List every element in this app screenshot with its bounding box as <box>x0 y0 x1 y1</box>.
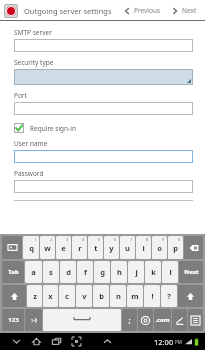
staticText: m <box>131 291 139 301</box>
button[interactable]: Shift <box>178 285 203 307</box>
button[interactable]: Screen capture <box>70 335 83 348</box>
button[interactable] <box>14 150 193 163</box>
staticText: .com <box>155 316 170 324</box>
staticText: e <box>61 243 66 253</box>
staticText: c <box>65 291 69 301</box>
button[interactable]: ! <box>144 285 160 307</box>
button[interactable]: Require sign-in <box>14 122 76 134</box>
staticText: l <box>169 267 172 277</box>
button[interactable]: u <box>120 236 135 259</box>
staticText: p <box>173 243 178 253</box>
staticText: x <box>48 291 53 301</box>
staticText: . <box>173 286 175 291</box>
staticText: n <box>116 291 121 301</box>
button[interactable]: Previous <box>120 4 164 17</box>
button[interactable]: e <box>56 236 71 259</box>
staticText: PM <box>175 339 182 345</box>
button[interactable]: c <box>59 285 75 307</box>
staticText: s <box>49 267 53 277</box>
button[interactable]: Expand <box>101 335 114 348</box>
button[interactable]: x <box>43 285 58 307</box>
button[interactable]: .com <box>154 309 171 331</box>
button[interactable]: Security type dropdown <box>14 69 193 85</box>
button[interactable]: w <box>40 236 55 259</box>
button[interactable]: t <box>88 236 103 259</box>
staticText: Tab <box>8 268 19 276</box>
staticText: Port <box>14 91 27 100</box>
staticText: 3 <box>66 237 69 242</box>
button[interactable]: Emoji <box>2 236 22 259</box>
staticText: 0 <box>178 237 181 242</box>
button[interactable]: :-) <box>25 309 42 331</box>
button[interactable]: g <box>94 261 110 283</box>
button[interactable]: b <box>93 285 109 307</box>
staticText: v <box>82 291 87 301</box>
button[interactable]: n <box>110 285 126 307</box>
button[interactable]: p <box>168 236 183 259</box>
staticText: y <box>109 243 114 253</box>
staticText: 8 <box>146 237 149 242</box>
button[interactable]: r <box>72 236 87 259</box>
staticText: User name <box>14 139 48 148</box>
button[interactable]: ; <box>122 309 137 331</box>
staticText: b <box>99 291 104 301</box>
staticText: u <box>125 243 130 253</box>
staticText: 123 <box>8 316 19 324</box>
button[interactable]: Handwriting <box>172 309 187 331</box>
staticText: Require sign-in <box>30 124 76 133</box>
button[interactable]: Recent apps <box>50 335 63 348</box>
button[interactable]: f <box>77 261 93 283</box>
staticText: 6 <box>114 237 117 242</box>
staticText: i <box>142 243 145 253</box>
button[interactable]: d <box>60 261 76 283</box>
button[interactable]: l <box>162 261 178 283</box>
button[interactable]: Home <box>30 335 43 348</box>
staticText: z <box>33 291 37 301</box>
button[interactable] <box>14 180 193 193</box>
button[interactable]: k <box>145 261 161 283</box>
button[interactable]: q <box>23 236 39 259</box>
button[interactable] <box>14 102 193 115</box>
button[interactable]: y <box>104 236 119 259</box>
button[interactable] <box>14 39 193 52</box>
staticText: g <box>100 267 105 277</box>
button[interactable]: s <box>43 261 59 283</box>
button[interactable]: Shift <box>2 285 26 307</box>
button[interactable]: Next <box>179 261 203 283</box>
button[interactable]: Backspace <box>184 236 203 259</box>
staticText: 2 <box>50 237 53 242</box>
button[interactable]: h <box>111 261 127 283</box>
button[interactable]: m <box>127 285 143 307</box>
button[interactable]: Space <box>43 309 121 331</box>
button[interactable]: o <box>152 236 167 259</box>
staticText: :-) <box>31 316 37 324</box>
button[interactable]: Tab <box>2 261 24 283</box>
staticText: h <box>117 267 122 277</box>
staticText: a <box>31 267 36 277</box>
staticText: Previous <box>134 6 161 15</box>
button[interactable]: At sign <box>138 309 153 331</box>
staticText: SMTP server <box>14 28 52 37</box>
button[interactable]: a <box>25 261 42 283</box>
button[interactable]: j <box>128 261 144 283</box>
other: Email app icon <box>4 4 18 18</box>
staticText: 5 <box>98 237 101 242</box>
staticText: ! <box>151 291 154 301</box>
staticText: 7 <box>130 237 133 242</box>
button[interactable]: v <box>76 285 92 307</box>
staticText: w <box>44 243 51 253</box>
staticText: r <box>78 243 82 253</box>
staticText: - <box>156 286 158 291</box>
button[interactable]: Next <box>168 4 200 17</box>
staticText: Security type <box>14 58 54 67</box>
button[interactable]: z <box>27 285 42 307</box>
staticText: d <box>66 267 71 277</box>
button[interactable]: i <box>136 236 151 259</box>
button[interactable]: Hide keyboard <box>10 335 23 348</box>
button[interactable]: ? <box>161 285 177 307</box>
button[interactable]: Settings <box>188 309 203 331</box>
staticText: 1 <box>34 237 37 242</box>
button[interactable]: 123 <box>2 309 24 331</box>
staticText: ? <box>167 291 171 301</box>
staticText: t <box>94 243 98 253</box>
